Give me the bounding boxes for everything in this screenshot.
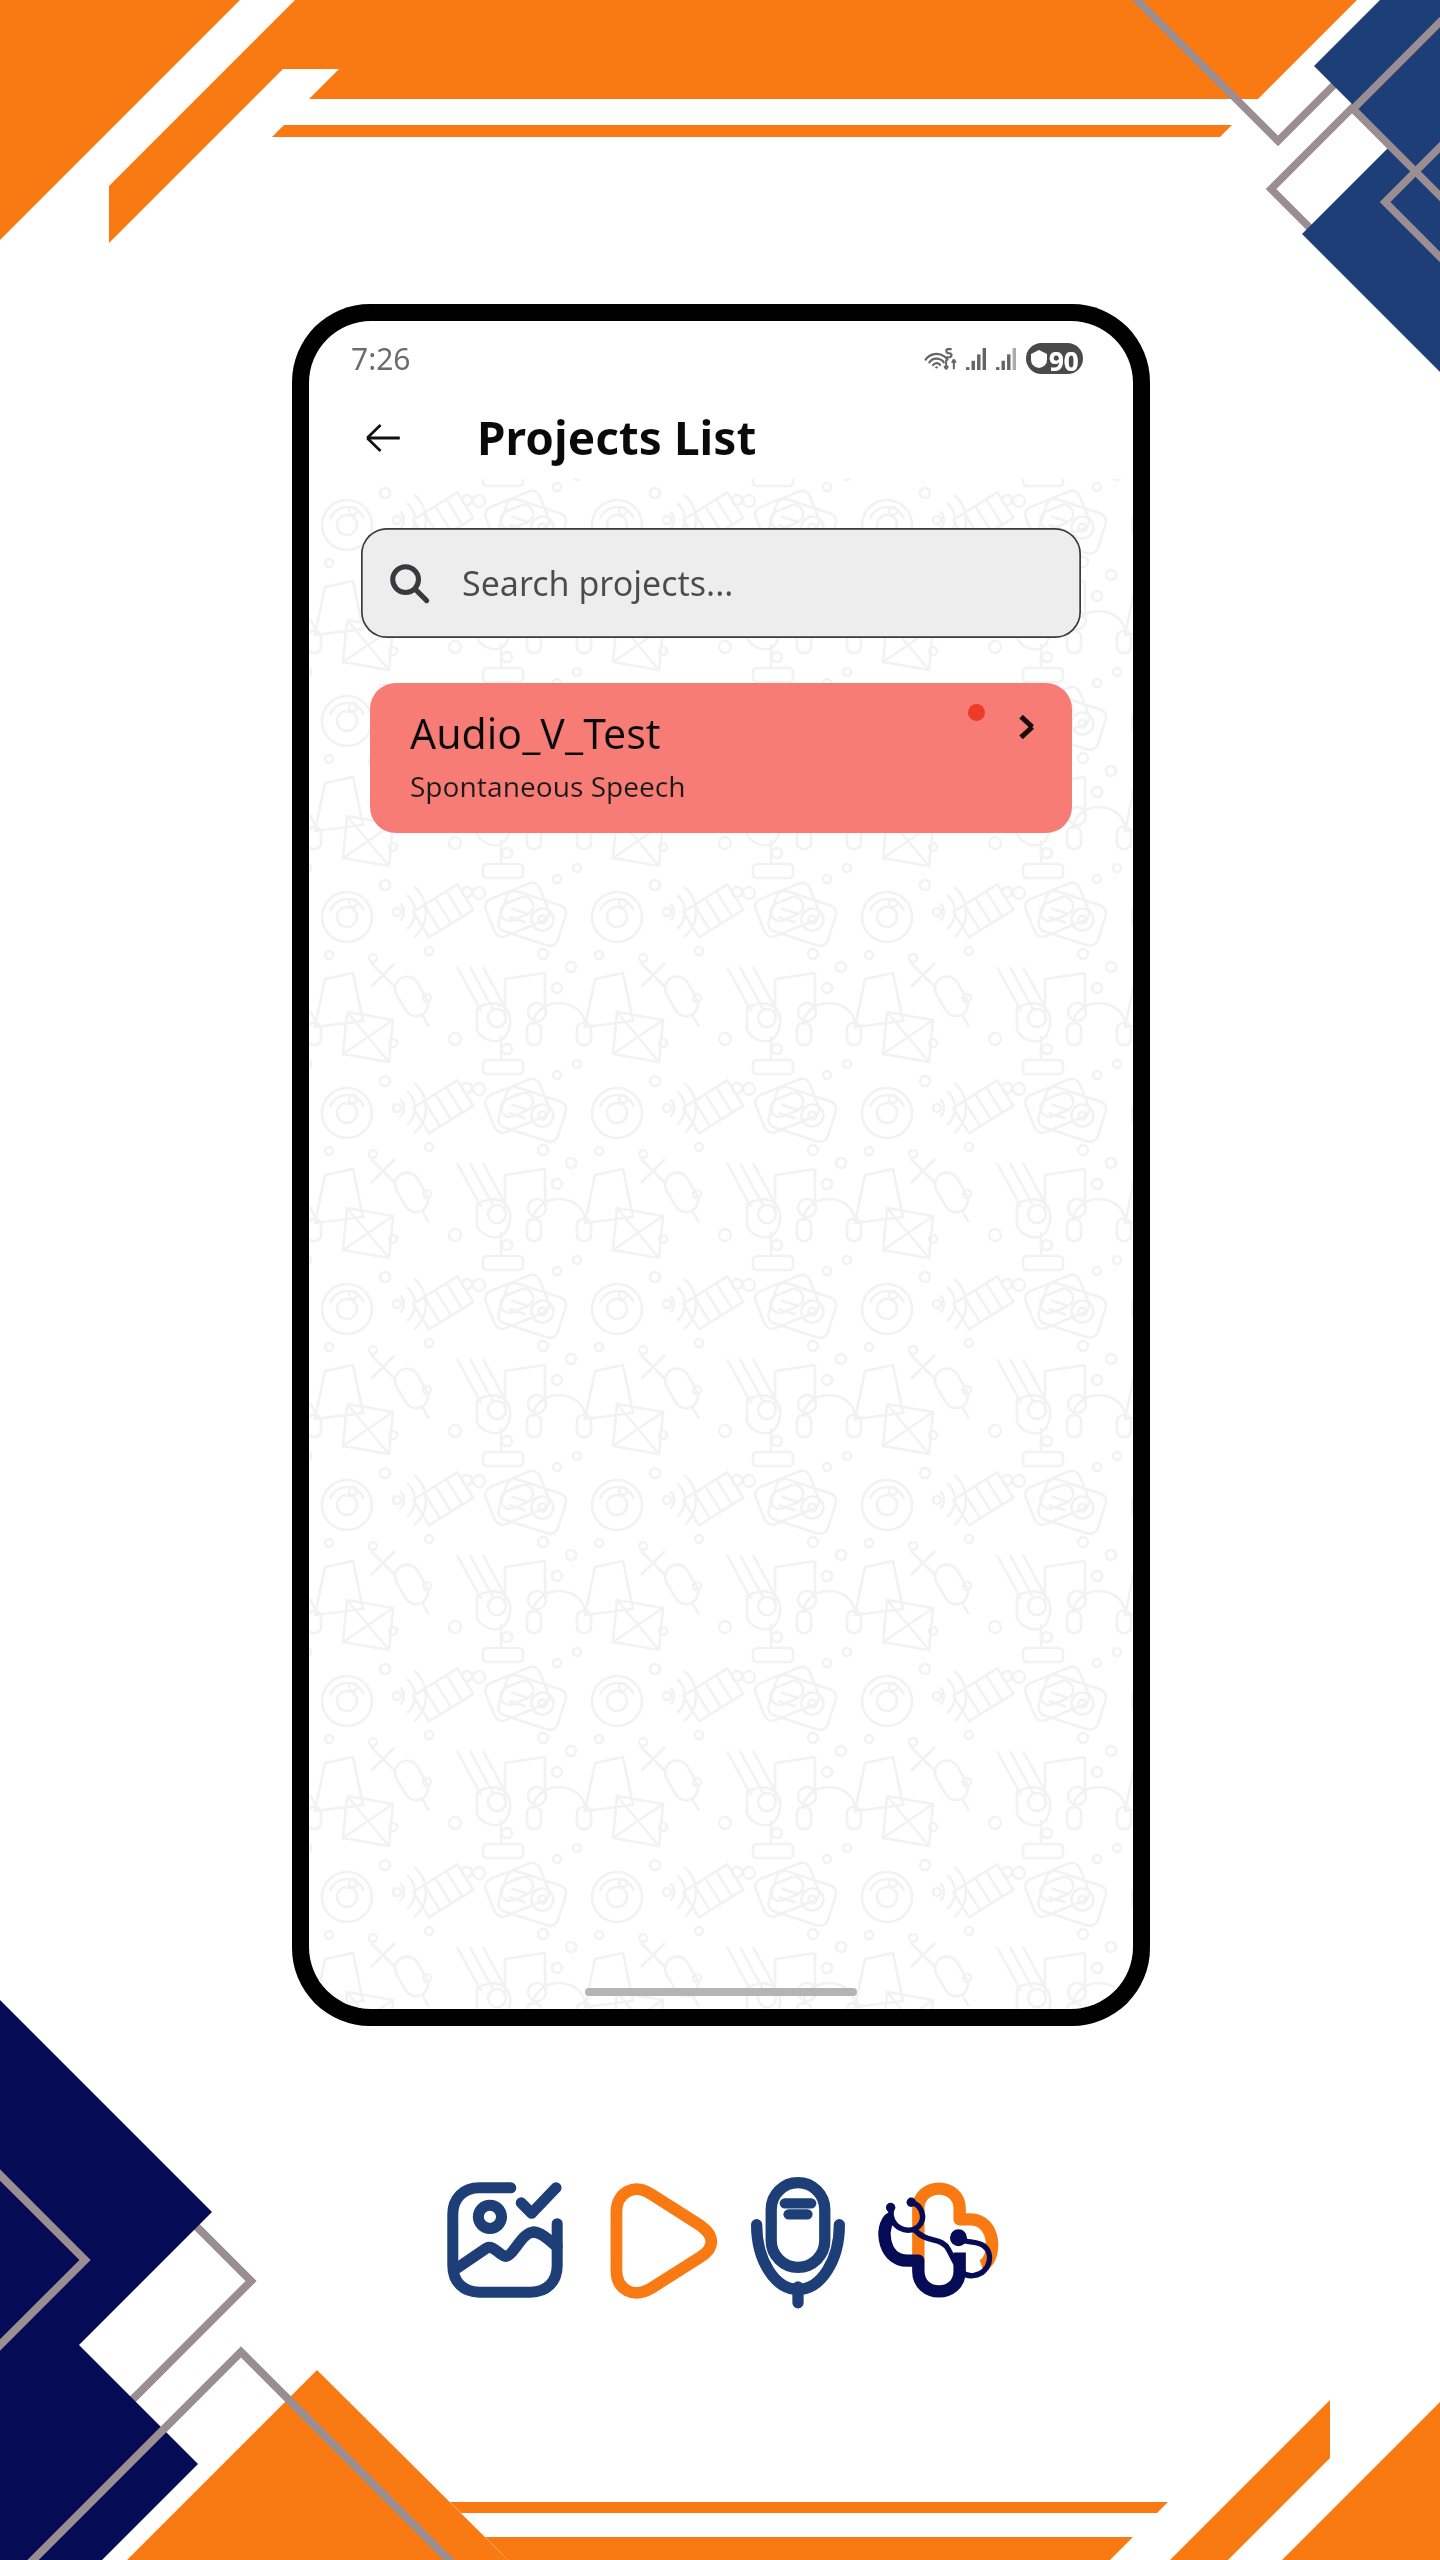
staticText: Spontaneous Speech xyxy=(410,767,686,805)
button[interactable]: Play xyxy=(591,2172,726,2307)
button[interactable]: Search projects... xyxy=(361,528,1081,638)
button[interactable]: Image check xyxy=(437,2172,572,2307)
staticText: Audio_V_Test xyxy=(410,705,661,761)
staticText: 7:26 xyxy=(351,338,411,379)
button[interactable]: Record xyxy=(730,2172,865,2314)
button[interactable]: Audio_V_Test xyxy=(370,683,1072,833)
button[interactable]: Medical xyxy=(871,2172,1006,2307)
staticText: 90 xyxy=(1049,343,1079,374)
staticText: Search projects... xyxy=(462,560,734,606)
button[interactable]: Back xyxy=(353,408,413,468)
staticText: Projects List xyxy=(477,406,757,469)
